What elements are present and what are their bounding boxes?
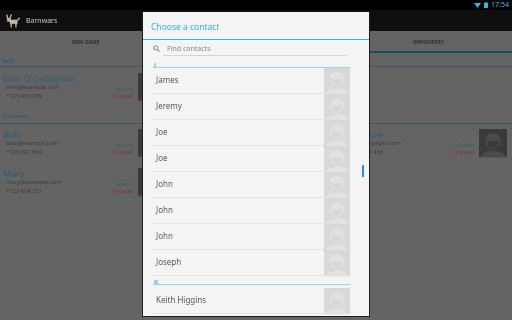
staticText: 0 losses [113,148,134,155]
staticText: Joseph [156,256,182,267]
staticText: Joe [156,152,168,163]
staticText: J [154,61,156,69]
button[interactable]: Bob [0,128,171,162]
staticText: Keith Higgins [156,294,207,305]
staticText: Find contacts [167,44,211,54]
button[interactable]: James [143,68,369,94]
staticText: 0 wins [117,141,134,148]
staticText: +123 789 456 [347,148,384,156]
staticText: NEW GAME [72,39,100,46]
staticText: Eoin O'Callaghan [3,72,75,84]
staticText: John [156,230,173,241]
staticText: John Doe [344,128,383,140]
staticText: Barnwars [26,16,58,26]
staticText: john@example.com [347,139,401,147]
button[interactable]: Jeremy [143,94,369,120]
button[interactable]: Joe [143,146,369,172]
staticText: Contacts [2,112,29,120]
button[interactable]: Joseph [143,250,369,276]
staticText: Bob [3,128,20,140]
staticText: 0 wins [458,141,475,148]
staticText: +123 456 789 [6,92,43,100]
button[interactable]: Eoin O'Callaghan [0,72,171,106]
button[interactable]: John Doe [341,128,512,162]
staticText: 0 wins [117,180,134,187]
button[interactable]: John [143,172,369,198]
staticText: 17:54 [491,0,509,10]
button[interactable]: John [143,224,369,250]
staticText: +123 654 321 [6,187,43,195]
staticText: 0 losses [113,92,134,99]
staticText: K [154,278,158,286]
staticText: James [156,74,179,85]
staticText: John [156,178,173,189]
button[interactable]: John [143,198,369,224]
staticText: OPPONENTS [413,39,444,46]
staticText: 0 losses [454,148,475,155]
button[interactable]: NEW GAME [56,31,116,54]
staticText: +123 987 654 [6,148,43,156]
staticText: 0 losses [113,187,134,194]
button[interactable]: Mary [0,167,171,201]
button[interactable]: Joe [143,120,369,146]
staticText: Mary [3,167,25,179]
staticText: Joe [156,126,168,137]
button[interactable]: OPPONENTS [398,31,458,54]
staticText: 0 wins [117,85,134,92]
staticText: eoin@example.com [6,83,60,91]
staticText: Self [2,57,13,65]
staticText: Jeremy [156,100,182,111]
staticText: John [156,204,173,215]
staticText: bob@example.com [6,139,59,147]
staticText: mary@example.com [6,178,62,186]
button[interactable]: Keith Higgins [143,288,369,314]
staticText: Choose a contact [151,21,220,33]
